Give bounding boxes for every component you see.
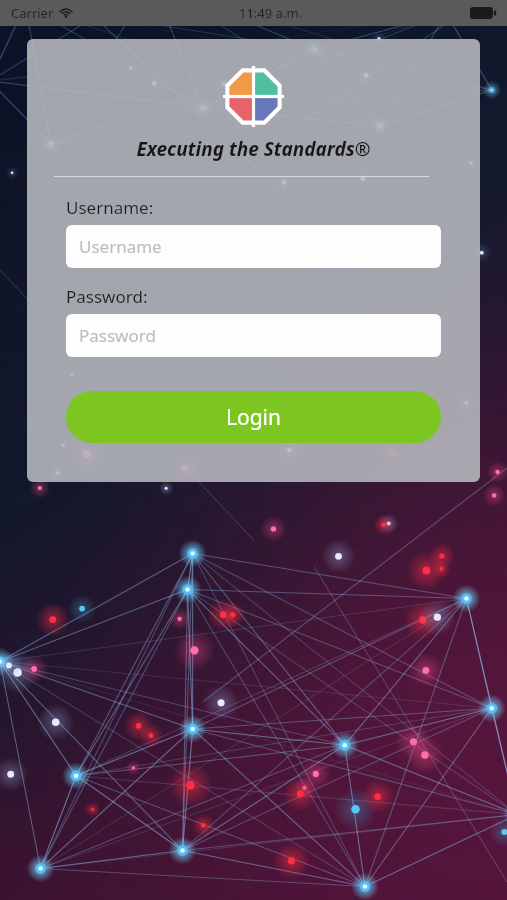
staticText: Password [79,324,156,347]
staticText: Login [226,403,282,432]
staticText: Password: [66,285,148,308]
staticText: Carrier [11,4,54,22]
staticText: Username: [66,196,154,219]
staticText: Executing the Standards® [66,136,441,162]
button[interactable]: Password [66,314,441,357]
staticText: 11:49 a.m. [239,4,303,22]
button[interactable]: Username [66,225,441,268]
staticText: Username [79,235,162,258]
button[interactable]: Login [66,391,441,443]
